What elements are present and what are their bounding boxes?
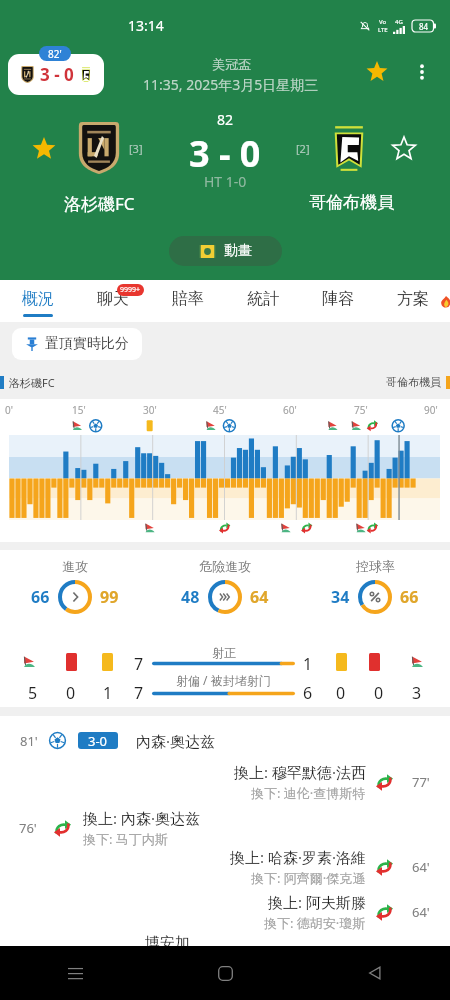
button[interactable]: More options <box>406 56 438 88</box>
button[interactable]: 控球率 <box>300 558 450 614</box>
staticText: 81' <box>20 732 38 750</box>
staticText: 45' <box>213 403 227 417</box>
staticText: 3 - 0 <box>40 63 74 86</box>
staticText: 64' <box>412 858 430 876</box>
staticText: 博安加 <box>145 934 190 953</box>
staticText: 30' <box>143 403 157 417</box>
button[interactable]: Favourite 哥倫布機員 <box>390 135 418 163</box>
staticText: 置頂實時比分 <box>45 335 129 353</box>
button[interactable]: Recent apps <box>0 946 150 1000</box>
staticText: 換上: 內森·奧达兹 <box>83 808 200 828</box>
button[interactable]: 81' <box>0 728 450 753</box>
staticText: 換下: 迪伦·查博斯特 <box>251 784 366 802</box>
staticText: 洛杉磯FC <box>9 375 55 390</box>
staticText: 3 - 0 <box>189 129 261 178</box>
staticText: 11:35, 2025年3月5日星期三 <box>143 75 319 94</box>
button[interactable]: 進攻 <box>0 558 150 614</box>
staticText: 換上: 穆罕默德·法西 <box>234 762 366 782</box>
staticText: 控球率 <box>356 558 395 574</box>
staticText: 洛杉磯FC <box>64 192 135 215</box>
staticText: 3-0 <box>88 732 108 749</box>
staticText: 危險進攻 <box>199 558 251 574</box>
button[interactable]: 賠率 <box>150 280 225 322</box>
staticText: 陣容 <box>322 289 354 309</box>
staticText: 方案 <box>397 289 429 309</box>
staticText: 射偏 / 被封堵射门 <box>176 672 271 688</box>
staticText: 美冠盃 <box>212 56 251 72</box>
staticText: 哥倫布機員 <box>386 375 441 389</box>
button[interactable]: 概況 <box>0 280 75 322</box>
staticText: 0' <box>5 403 13 417</box>
button[interactable]: 換上: 哈森·罗素·洛維 <box>0 846 450 888</box>
staticText: 動畫 <box>224 242 252 260</box>
staticText: 4G <box>395 18 403 26</box>
staticText: 64 <box>250 586 269 608</box>
staticText: 15' <box>72 403 86 417</box>
staticText: 換下: 阿齊爾·傑克遜 <box>251 869 366 887</box>
button[interactable]: 換上: 穆罕默德·法西 <box>0 761 450 803</box>
staticText: 5 <box>28 682 38 702</box>
staticText: 77' <box>412 773 430 791</box>
staticText: [2] <box>296 141 310 156</box>
staticText: 9999+ <box>120 285 141 295</box>
button[interactable]: 動畫 <box>169 236 282 266</box>
button[interactable]: 統計 <box>225 280 300 322</box>
button[interactable]: 3 - 0 <box>8 54 104 95</box>
staticText: 賠率 <box>172 289 204 309</box>
button[interactable]: Favourite match <box>361 56 393 88</box>
staticText: 64' <box>412 903 430 921</box>
staticText: 射正 <box>212 645 236 660</box>
staticText: 換上: 哈森·罗素·洛維 <box>230 847 366 867</box>
button[interactable]: Favourite 洛杉磯FC <box>30 135 58 163</box>
staticText: LTE <box>378 26 388 34</box>
staticText: 進攻 <box>62 558 88 574</box>
button[interactable]: 危險進攻 <box>150 558 300 614</box>
staticText: 內森·奧达兹 <box>136 731 216 751</box>
staticText: 哥倫布機員 <box>309 192 394 213</box>
staticText: 0 <box>66 682 76 702</box>
staticText: 82 <box>217 110 234 129</box>
button[interactable]: 置頂實時比分 <box>12 328 142 360</box>
button[interactable]: Home <box>150 946 300 1000</box>
staticText: 48 <box>181 586 200 608</box>
staticText: 0 <box>336 682 346 702</box>
staticText: 聊天 <box>97 289 129 309</box>
staticText: 75' <box>354 403 368 417</box>
staticText: 60' <box>283 403 297 417</box>
staticText: 換下: 德胡安·瓊斯 <box>264 914 366 932</box>
staticText: 13:14 <box>128 16 164 35</box>
staticText: 0 <box>374 682 384 702</box>
staticText: 7 <box>134 653 144 673</box>
staticText: 統計 <box>247 289 279 309</box>
staticText: 換上: 阿夫斯滕 <box>268 892 366 912</box>
button[interactable]: 聊天 <box>75 280 150 322</box>
staticText: 99 <box>100 586 119 608</box>
staticText: [3] <box>129 141 143 156</box>
button[interactable]: 換上: 阿夫斯滕 <box>0 891 450 933</box>
staticText: 1 <box>103 682 113 702</box>
button[interactable]: Back <box>300 946 450 1000</box>
staticText: 概況 <box>22 289 54 309</box>
staticText: Vo <box>379 18 387 26</box>
staticText: 66 <box>400 586 419 608</box>
button[interactable]: 76' <box>0 807 450 849</box>
staticText: 3 <box>412 682 422 702</box>
staticText: 6 <box>303 682 313 702</box>
staticText: 84 <box>419 21 429 32</box>
staticText: 7 <box>134 682 144 702</box>
staticText: 1 <box>303 653 313 673</box>
staticText: 76' <box>19 819 37 837</box>
staticText: 82' <box>48 47 62 61</box>
staticText: 換下: 马丁内斯 <box>83 830 168 848</box>
button[interactable]: 方案 <box>375 280 450 322</box>
button[interactable]: 陣容 <box>300 280 375 322</box>
staticText: HT 1-0 <box>204 172 247 191</box>
staticText: 66 <box>31 586 50 608</box>
staticText: 34 <box>331 586 350 608</box>
staticText: 90' <box>424 403 438 417</box>
